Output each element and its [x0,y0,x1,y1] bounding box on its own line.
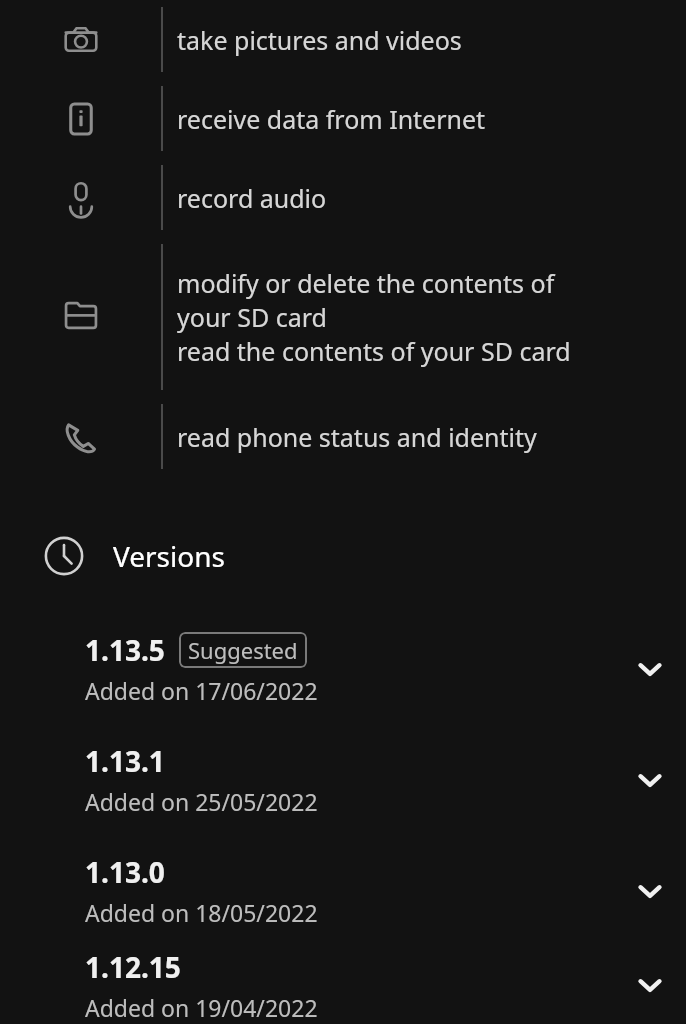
staticText: 1.13.5 [85,631,165,669]
other: Expand 1.12.15 [628,963,672,1007]
staticText: Suggested [188,635,298,665]
staticText: Versions [113,537,225,575]
button[interactable]: 1.13.1 [0,724,686,835]
staticText: modify or delete the contents of [177,266,555,300]
button[interactable]: Phone permission [0,397,686,476]
staticText: Added on 19/04/2022 [85,992,318,1023]
staticText: receive data from Internet [177,102,486,136]
staticText: your SD card [177,300,327,334]
staticText: 1.13.1 [85,742,165,780]
other: Expand 1.13.0 [628,869,672,913]
other: Expand 1.13.1 [628,758,672,802]
staticText: record audio [177,181,327,215]
button[interactable]: 1.13.5 [0,613,686,724]
other: Camera permission [0,0,161,79]
staticText: read phone status and identity [177,420,537,454]
button[interactable]: 1.13.0 [0,835,686,946]
staticText: Added on 18/05/2022 [85,897,318,928]
button[interactable]: Network permission [0,79,686,158]
staticText: 1.12.15 [85,948,181,986]
button[interactable]: 1.12.15 [0,946,686,1024]
staticText: take pictures and videos [177,23,462,57]
button[interactable]: Versions [0,521,686,591]
button[interactable]: Microphone permission [0,158,686,237]
button[interactable]: Camera permission [0,0,686,79]
other: Network permission [0,79,161,158]
staticText: Added on 17/06/2022 [85,675,318,706]
button[interactable]: Storage permission [0,237,686,397]
other: Microphone permission [0,158,161,237]
other: Storage permission [0,237,161,397]
staticText: Added on 25/05/2022 [85,786,318,817]
staticText: 1.13.0 [85,853,165,891]
staticText: read the contents of your SD card [177,334,571,368]
other: Expand 1.13.5 [628,647,672,691]
other: Phone permission [0,397,161,476]
